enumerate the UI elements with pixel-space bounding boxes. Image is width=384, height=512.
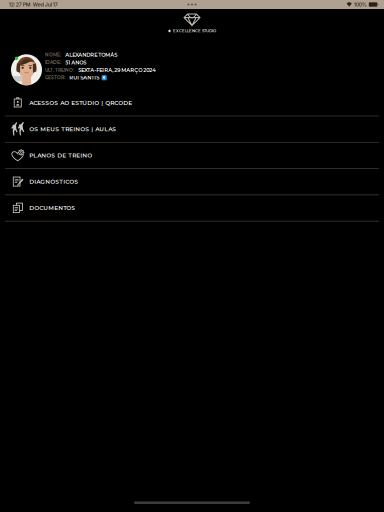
staticText: RUI SANTIS	[69, 74, 99, 81]
staticText: 12:27 PM Wed Jul 17	[9, 1, 58, 8]
staticText: SEXTA-FEIRA, 29 MARÇO 2024	[78, 67, 156, 73]
staticText: PLANOS DE TREINO	[29, 152, 92, 159]
button[interactable]: DOCUMENTOS	[0, 195, 384, 221]
staticText: DIAGNÓSTICOS	[29, 178, 78, 185]
staticText: ÚLT. TREINO:	[45, 67, 74, 73]
staticText: IDADE:	[45, 60, 61, 65]
staticText: EXCELLENCE STUDIO	[173, 29, 216, 33]
staticText: 51 ANOS	[65, 59, 86, 66]
staticText: ALEXANDRE TOMÁS	[65, 52, 117, 58]
button[interactable]: OS MEUS TREINOS | AULAS	[0, 116, 384, 143]
button[interactable]: ACESSOS AO ESTÚDIO | QRCODE	[0, 90, 384, 116]
staticText: DOCUMENTOS	[29, 204, 75, 212]
staticText: GESTOR:	[45, 75, 65, 80]
staticText: 100%	[354, 1, 367, 8]
button[interactable]: PLANOS DE TREINO	[0, 143, 384, 169]
staticText: NOME:	[45, 52, 61, 58]
button[interactable]: DIAGNÓSTICOS	[0, 169, 384, 195]
staticText: OS MEUS TREINOS | AULAS	[29, 125, 116, 133]
staticText: ACESSOS AO ESTÚDIO | QRCODE	[29, 99, 132, 106]
